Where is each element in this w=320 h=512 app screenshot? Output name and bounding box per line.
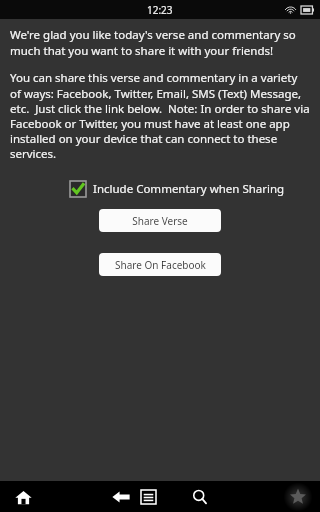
staticText: Include Commentary when Sharing [93,181,285,197]
button[interactable]: Favorites [284,483,312,511]
staticText: We're glad you like today's verse and co… [10,27,310,58]
button[interactable]: Share Verse [99,209,221,232]
staticText: You can share this verse and commentary … [10,70,310,161]
button[interactable]: Share On Facebook [99,253,221,276]
button[interactable]: Include Commentary when Sharing [70,181,285,197]
button[interactable]: Search [187,484,213,510]
staticText: Share On Facebook [115,258,206,272]
staticText: 12:23 [147,3,173,17]
button[interactable]: Menu [135,484,161,510]
staticText: Share Verse [132,214,188,228]
button[interactable]: Back [108,484,134,510]
button[interactable]: Home [10,484,36,510]
